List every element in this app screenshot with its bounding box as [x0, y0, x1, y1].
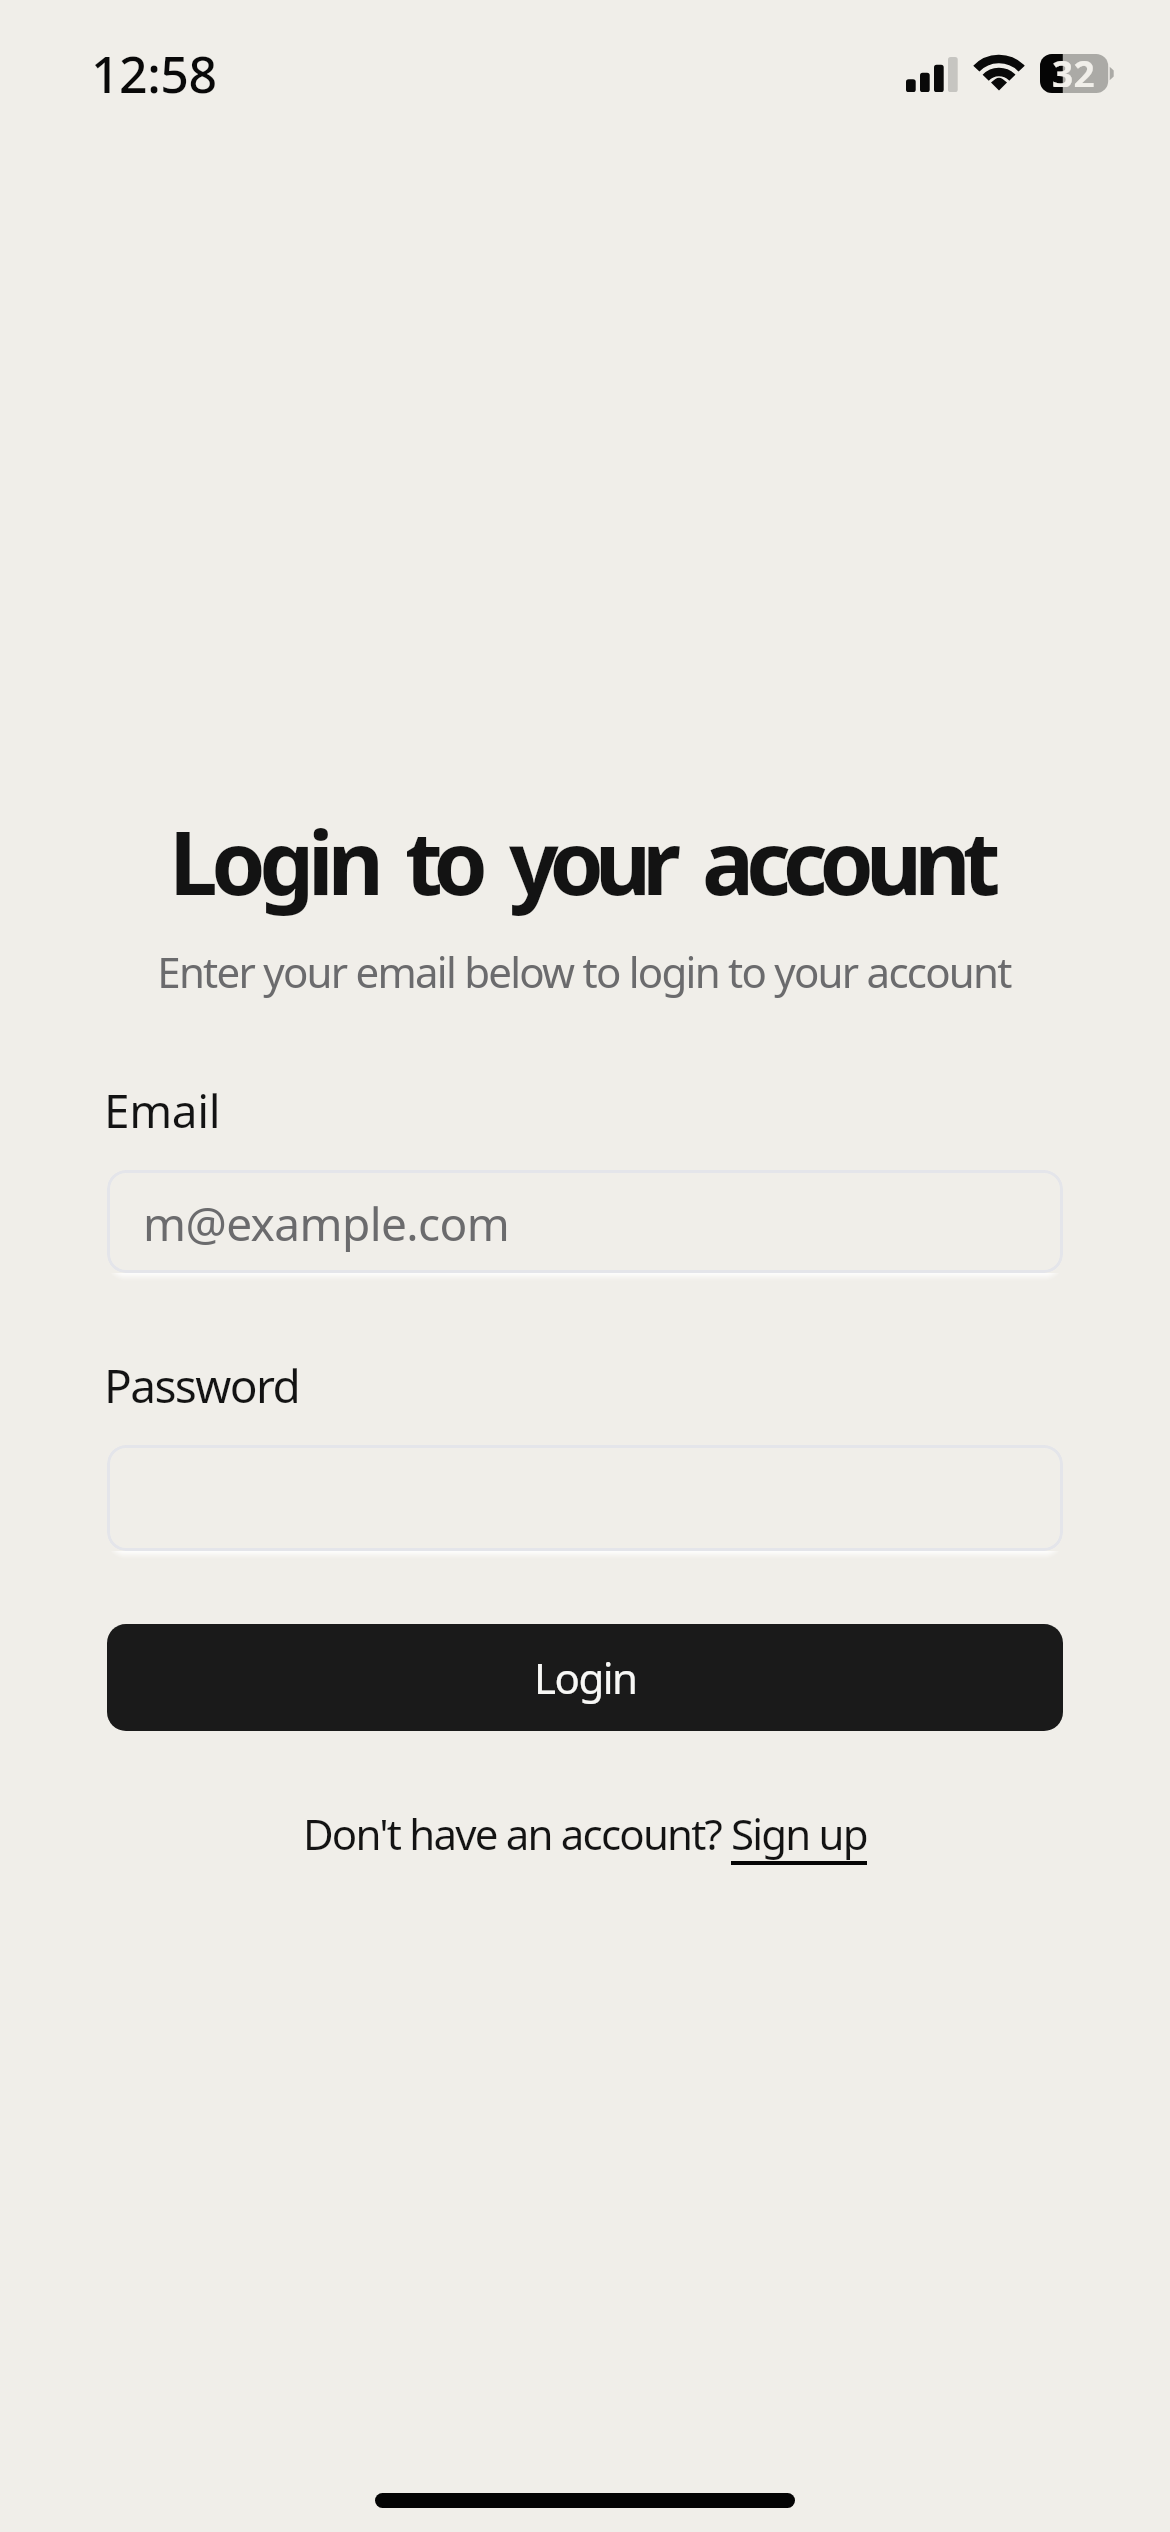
staticText: your: [509, 802, 672, 920]
staticText: m@example.com: [143, 1192, 510, 1255]
staticText: Login: [534, 1649, 637, 1706]
staticText: Password: [104, 1354, 300, 1417]
staticText: account: [702, 802, 993, 920]
staticText: 32: [1052, 48, 1096, 87]
other: Cellular signal: [906, 56, 958, 92]
button[interactable]: Login: [107, 1624, 1063, 1731]
staticText: Login: [169, 802, 378, 920]
other: Wi-Fi: [975, 54, 1023, 92]
other: Battery 32 percent: [1040, 54, 1116, 93]
staticText: to: [405, 802, 479, 920]
staticText: Don't have an account?: [303, 1805, 731, 1862]
staticText: Email: [104, 1079, 221, 1142]
staticText: 12:58: [91, 40, 217, 108]
button[interactable]: m@example.com: [107, 1170, 1063, 1273]
staticText: Enter your email below to login to your …: [0, 943, 1169, 1000]
button[interactable]: Sign up: [731, 1805, 867, 1862]
staticText: Sign up: [731, 1805, 867, 1862]
